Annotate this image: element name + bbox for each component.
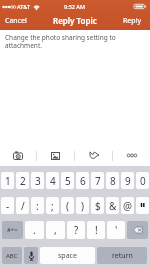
button[interactable]: Photo library (37, 145, 74, 166)
staticText: ! (95, 223, 98, 237)
staticText: ( (66, 199, 69, 213)
staticText: 1 (5, 174, 11, 188)
button[interactable]: ? (67, 221, 85, 239)
staticText: AT&T (17, 3, 31, 10)
button[interactable]: / (16, 197, 29, 214)
staticText: 9:52 AM (64, 3, 86, 10)
staticText: 5 (65, 174, 71, 188)
button[interactable]: & (106, 197, 119, 214)
button[interactable]: Backspace (127, 221, 148, 239)
staticText: 6 (80, 174, 86, 188)
staticText: , (54, 223, 57, 237)
staticText: 9 (125, 174, 131, 188)
staticText: Change the photo sharing setting to atta… (5, 33, 128, 50)
staticText: : (36, 199, 39, 213)
staticText: Reply (123, 16, 141, 26)
button[interactable]: Send (75, 145, 112, 166)
button[interactable]: 6 (76, 172, 89, 189)
staticText: $ (95, 199, 101, 213)
button[interactable]: 2 (16, 172, 29, 189)
button[interactable]: Cancel (0, 13, 32, 30)
button[interactable]: , (46, 221, 65, 239)
staticText: #+= (7, 226, 18, 234)
staticText: 0 (140, 174, 146, 188)
staticText: & (109, 199, 117, 213)
button[interactable]: ' (107, 221, 125, 239)
staticText: 8 (110, 174, 116, 188)
button[interactable]: 4 (46, 172, 59, 189)
staticText: space (58, 251, 77, 261)
button[interactable]: : (31, 197, 44, 214)
button[interactable]: #+= (2, 221, 23, 239)
button[interactable]: return (97, 247, 147, 264)
button[interactable]: . (25, 221, 44, 239)
button[interactable]: 1 (1, 172, 14, 189)
button[interactable]: Camera (0, 145, 36, 166)
button[interactable]: Reply (118, 13, 150, 30)
staticText: 7 (95, 174, 101, 188)
staticText: 4 (50, 174, 56, 188)
staticText: 2 (20, 174, 26, 188)
button[interactable]: Dictation (24, 247, 38, 264)
staticText: Cancel (5, 16, 27, 26)
staticText: ' (115, 223, 118, 237)
staticText: - (6, 199, 10, 213)
staticText: ; (51, 199, 54, 213)
staticText: Reply Topic (53, 15, 97, 26)
button[interactable]: 7 (91, 172, 104, 189)
staticText: . (33, 223, 36, 237)
button[interactable]: @ (121, 197, 134, 214)
staticText: ? (74, 223, 79, 237)
button[interactable]: 0 (136, 172, 149, 189)
staticText: ABC (6, 252, 18, 260)
staticText: @ (123, 199, 132, 213)
button[interactable]: 8 (106, 172, 119, 189)
button[interactable] (136, 197, 149, 214)
button[interactable]: $ (91, 197, 104, 214)
button[interactable]: ABC (2, 247, 22, 264)
staticText: / (21, 199, 25, 213)
button[interactable]: ; (46, 197, 59, 214)
staticText: 3 (35, 174, 41, 188)
button[interactable]: ( (61, 197, 74, 214)
staticText: return (112, 251, 133, 261)
button[interactable]: 5 (61, 172, 74, 189)
button[interactable]: - (1, 197, 14, 214)
button[interactable]: space (40, 247, 95, 264)
button[interactable]: ) (76, 197, 89, 214)
staticText: ) (81, 199, 84, 213)
button[interactable]: 3 (31, 172, 44, 189)
button[interactable]: 9 (121, 172, 134, 189)
button[interactable]: More options (113, 145, 150, 166)
button[interactable]: ! (87, 221, 105, 239)
